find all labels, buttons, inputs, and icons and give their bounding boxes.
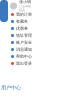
button[interactable]: 优惠券 (8, 25, 34, 32)
staticText: 地址管理 (16, 33, 32, 38)
staticText: 用户中心 (1, 84, 21, 91)
button[interactable]: 帮助中心 (8, 53, 34, 60)
button[interactable]: 地址管理 (8, 32, 34, 39)
button[interactable]: 我的订单 (8, 11, 34, 18)
staticText: 消息通知 (16, 47, 32, 52)
staticText: 账户安全 (16, 40, 32, 45)
button[interactable]: 收藏夹 (8, 18, 34, 25)
staticText: 退出登录 (16, 61, 32, 66)
staticText: 帮助中心 (16, 54, 32, 59)
button[interactable]: 消息通知 (8, 46, 34, 53)
staticText: 我的订单 (16, 12, 32, 17)
staticText: 138****8888 (19, 5, 31, 12)
button[interactable]: 账户安全 (8, 39, 34, 46)
staticText: 张小明 (19, 0, 31, 4)
staticText: 优惠券 (16, 26, 28, 31)
staticText: 收藏夹 (16, 19, 28, 24)
button[interactable]: 退出登录 (8, 60, 34, 67)
